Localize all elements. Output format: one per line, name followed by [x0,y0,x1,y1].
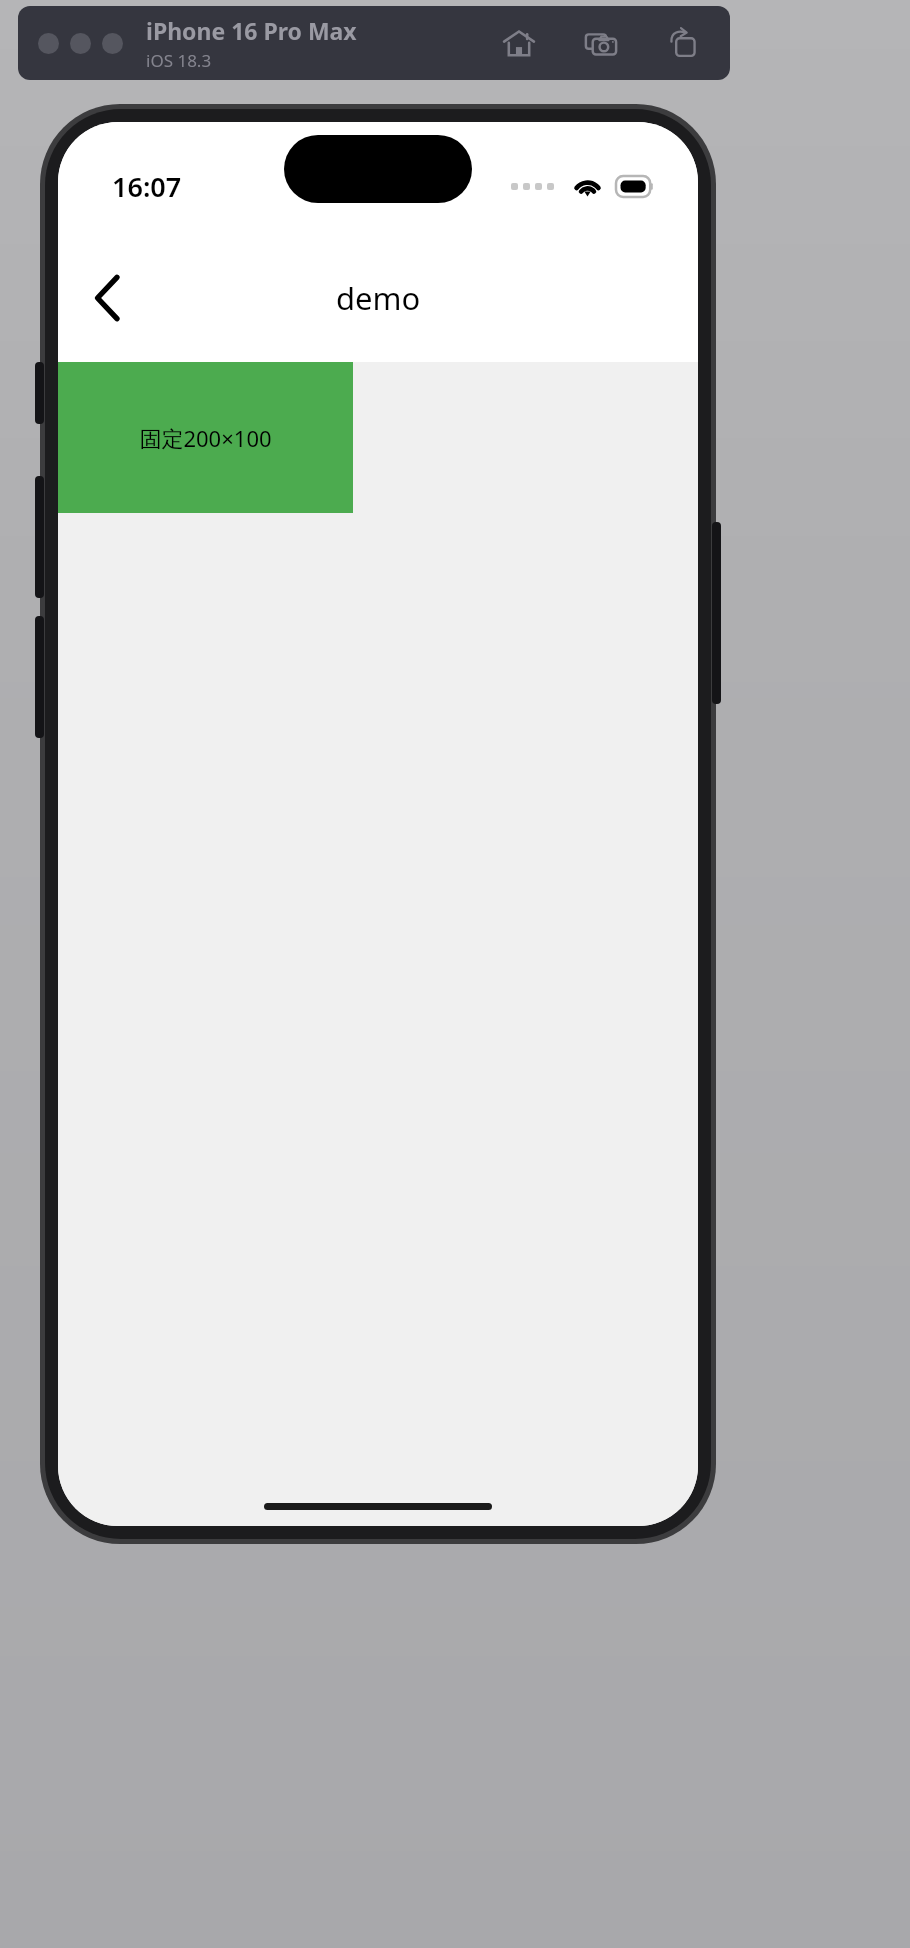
staticText: demo [336,277,421,319]
button[interactable]: 固定200×100 [58,362,353,513]
button[interactable]: Back [74,265,140,331]
button[interactable]: Window control [70,33,91,54]
button[interactable]: Home [496,20,542,66]
staticText: iPhone 16 Pro Max [146,15,357,46]
staticText: 16:07 [112,168,182,205]
button[interactable]: Window control [38,33,59,54]
staticText: iOS 18.3 [146,49,212,72]
button[interactable]: Window control [102,33,123,54]
button[interactable]: Screenshot [578,20,624,66]
staticText: 固定200×100 [139,423,272,453]
button[interactable]: Rotate [660,20,706,66]
